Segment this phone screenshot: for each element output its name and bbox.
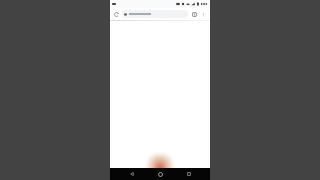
button[interactable] — [122, 10, 188, 18]
button[interactable]: Back — [125, 168, 139, 180]
button[interactable]: Recent apps — [182, 168, 196, 180]
button[interactable]: Switch tabs — [190, 10, 199, 19]
button[interactable]: Home — [153, 168, 167, 180]
button[interactable]: More options — [199, 10, 208, 19]
button[interactable]: Home — [112, 10, 121, 19]
